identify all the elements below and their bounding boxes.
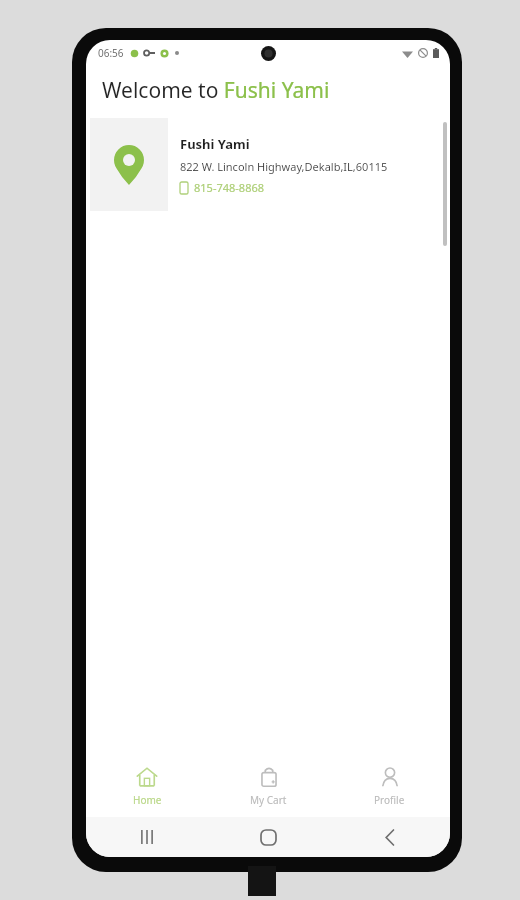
staticText: 06:56 [98, 46, 124, 60]
staticText: Welcome to Fushi Yami [102, 76, 330, 105]
button[interactable]: Home [208, 817, 329, 857]
staticText: Fushi Yami [180, 135, 250, 153]
staticText: Profile [374, 793, 405, 807]
staticText: 815-748-8868 [194, 180, 265, 195]
staticText: 822 W. Lincoln Highway,Dekalb,IL,60115 [180, 159, 388, 174]
button[interactable]: Recent apps [86, 817, 208, 857]
button[interactable]: Home [86, 755, 208, 817]
staticText: My Cart [250, 793, 287, 807]
button[interactable]: Profile [329, 755, 450, 817]
button[interactable]: My Cart [208, 755, 329, 817]
button[interactable]: Back [329, 817, 450, 857]
other: Call restaurant [180, 182, 188, 194]
button[interactable]: Call restaurant [180, 180, 265, 195]
button[interactable]: Fushi Yami [88, 117, 448, 212]
staticText: Home [133, 793, 162, 807]
